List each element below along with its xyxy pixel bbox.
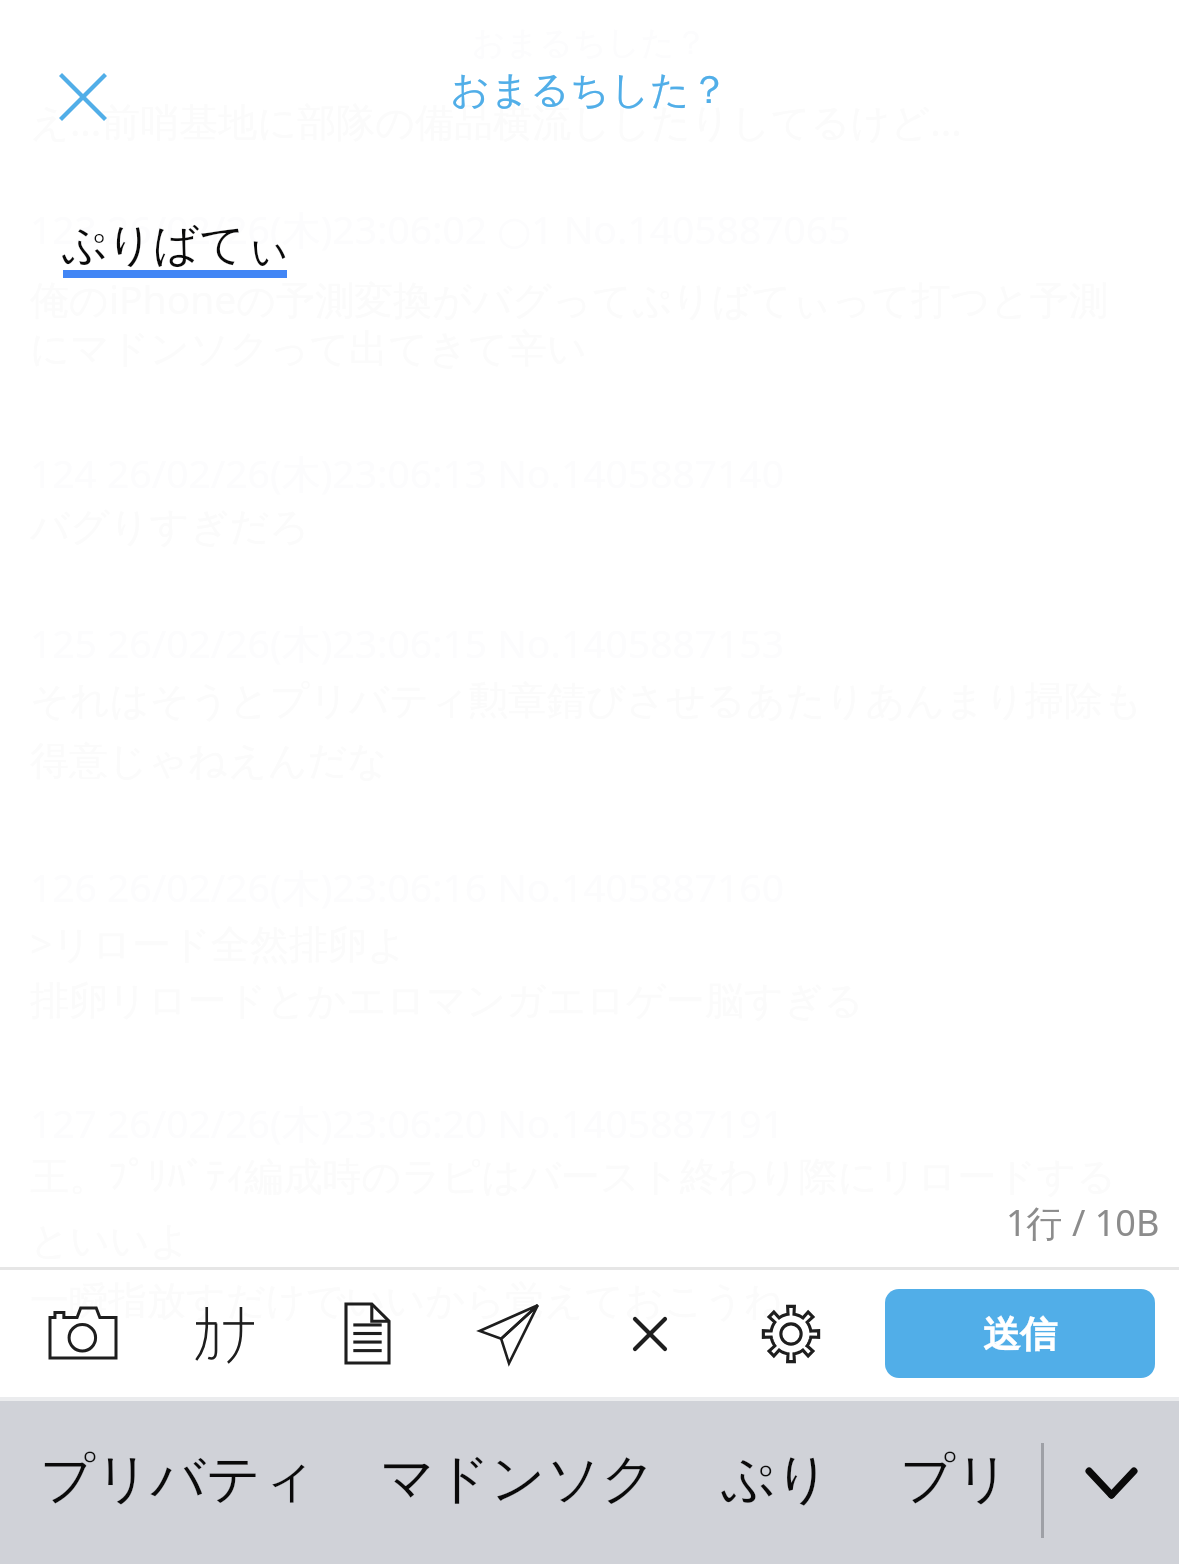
button[interactable]: ぷり <box>694 1401 857 1564</box>
staticText: マドンソク <box>380 1445 657 1513</box>
button[interactable]: Katakana input <box>174 1270 276 1397</box>
staticText: え...前哨基地に部隊の備品横流ししたりしてるけど... <box>30 94 962 147</box>
staticText: 俺のiPhoneの予測変換がバグってぷりばてぃって打つと予測 <box>30 272 1109 325</box>
button[interactable]: プリバティ <box>14 1401 343 1564</box>
button[interactable]: Close <box>34 48 130 144</box>
button[interactable]: Quick send <box>457 1270 561 1397</box>
staticText: ぷり <box>720 1445 831 1513</box>
staticText: 123 26/02/26(木)23:06:02 ○1 No.1405887065 <box>30 202 851 255</box>
button[interactable]: Expand candidates <box>1049 1401 1175 1564</box>
button[interactable]: Attach photo <box>28 1270 138 1397</box>
staticText: 一瞬指放すだけでいいから覚えておこうね <box>30 1276 784 1325</box>
button[interactable]: Insert template <box>324 1270 411 1397</box>
staticText: プリ <box>900 1445 1011 1513</box>
button[interactable]: プリ <box>874 1401 1037 1564</box>
staticText: おまるちした？ <box>0 65 1179 114</box>
button[interactable]: Clear text <box>613 1270 687 1397</box>
button[interactable]: 送信 <box>885 1289 1155 1378</box>
staticText: プリバティ <box>40 1445 317 1513</box>
staticText: 1行 / 10B <box>1006 1198 1160 1247</box>
button[interactable]: Settings <box>740 1270 842 1397</box>
staticText: 送信 <box>983 1311 1057 1358</box>
staticText: ぷりばてぃ <box>61 217 292 274</box>
button[interactable]: マドンソク <box>354 1401 683 1564</box>
